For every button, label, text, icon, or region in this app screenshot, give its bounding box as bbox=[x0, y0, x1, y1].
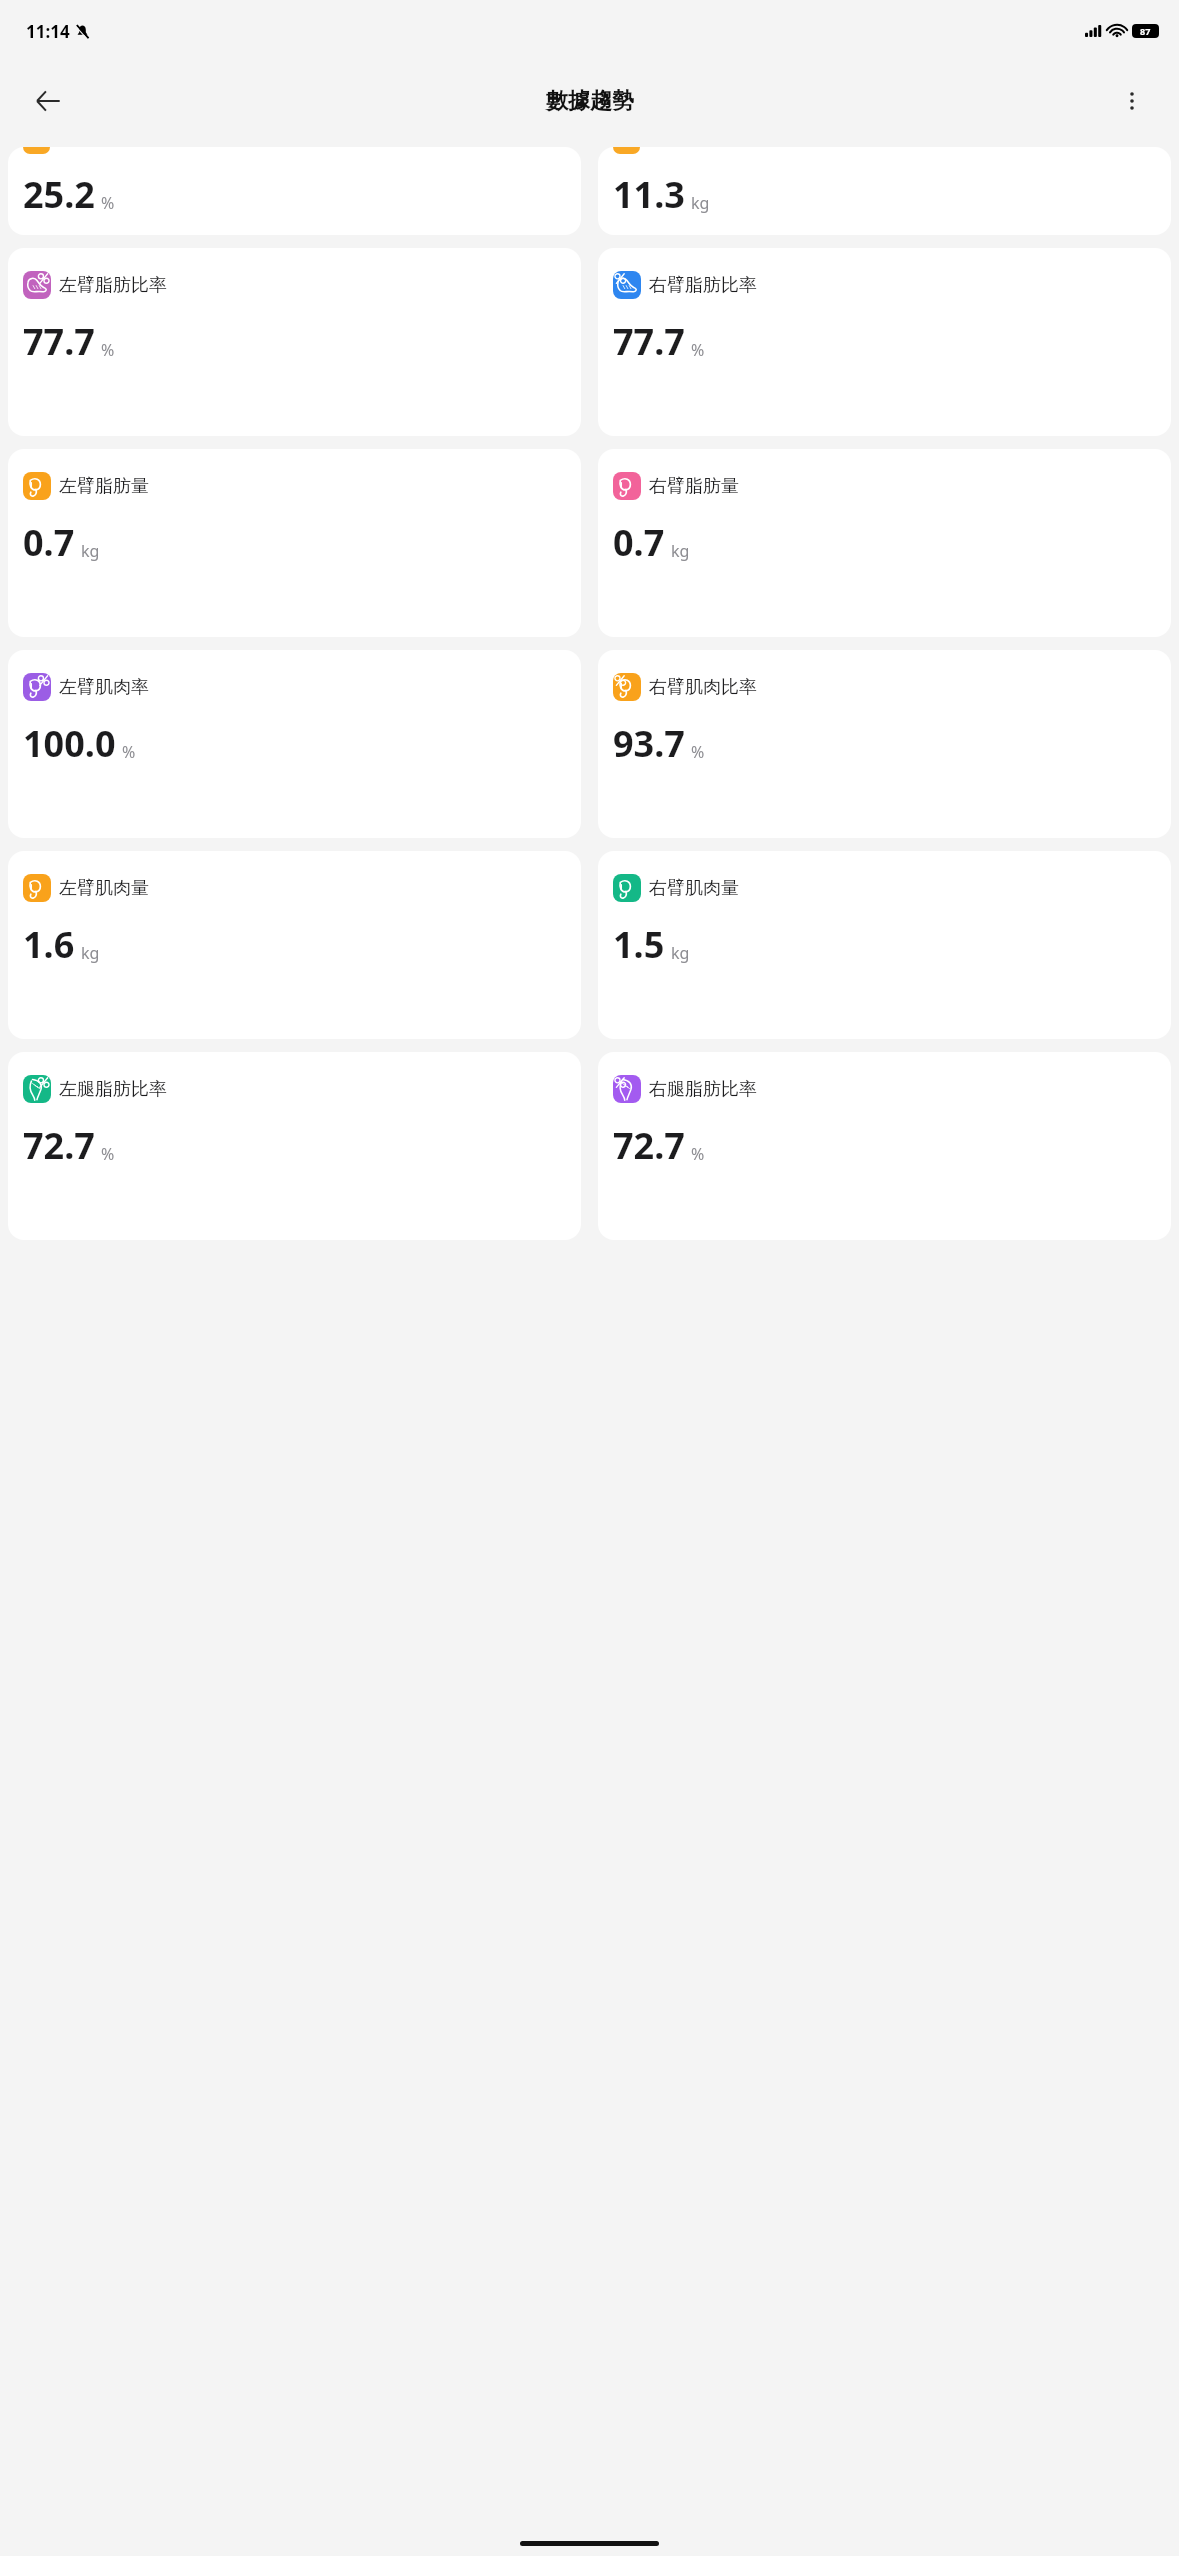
staticText: 左臂肌肉率 bbox=[59, 676, 149, 699]
staticText: 左腿脂肪比率 bbox=[59, 1078, 167, 1101]
staticText: 左臂脂肪量 bbox=[59, 475, 149, 498]
staticText: kg bbox=[81, 540, 100, 562]
staticText: 100.0 bbox=[23, 719, 116, 768]
staticText: kg bbox=[691, 192, 710, 214]
button[interactable]: 左臂脂肪量 bbox=[8, 449, 581, 637]
button[interactable]: 右臂脂肪比率 bbox=[598, 248, 1171, 436]
button[interactable]: Back bbox=[22, 75, 74, 127]
staticText: 左臂肌肉量 bbox=[59, 877, 149, 900]
button[interactable]: 左臂肌肉量 bbox=[8, 851, 581, 1039]
staticText: % bbox=[101, 192, 115, 214]
staticText: 右臂脂肪量 bbox=[649, 475, 739, 498]
staticText: 93.7 bbox=[613, 719, 685, 768]
button[interactable]: 25.2 bbox=[8, 147, 581, 235]
button[interactable]: 右腿脂肪比率 bbox=[598, 1052, 1171, 1240]
staticText: 87 bbox=[1140, 25, 1151, 37]
staticText: 數據趨勢 bbox=[546, 87, 634, 115]
staticText: 11.3 bbox=[613, 170, 685, 219]
button[interactable]: 左臂肌肉率 bbox=[8, 650, 581, 838]
staticText: kg bbox=[671, 540, 690, 562]
button[interactable]: 右臂肌肉量 bbox=[598, 851, 1171, 1039]
button[interactable]: 11.3 bbox=[598, 147, 1171, 235]
staticText: 左臂脂肪比率 bbox=[59, 274, 167, 297]
staticText: 77.7 bbox=[613, 317, 685, 366]
staticText: 1.6 bbox=[23, 920, 75, 969]
button[interactable]: 左腿脂肪比率 bbox=[8, 1052, 581, 1240]
button[interactable]: 右臂肌肉比率 bbox=[598, 650, 1171, 838]
staticText: % bbox=[101, 1143, 115, 1165]
staticText: 11:14 bbox=[26, 20, 70, 43]
staticText: 右臂肌肉量 bbox=[649, 877, 739, 900]
staticText: % bbox=[691, 339, 705, 361]
staticText: 右臂脂肪比率 bbox=[649, 274, 757, 297]
staticText: 72.7 bbox=[23, 1121, 95, 1170]
button[interactable]: 右臂脂肪量 bbox=[598, 449, 1171, 637]
staticText: 0.7 bbox=[613, 518, 665, 567]
staticText: % bbox=[101, 339, 115, 361]
staticText: 0.7 bbox=[23, 518, 75, 567]
staticText: 右臂肌肉比率 bbox=[649, 676, 757, 699]
staticText: 77.7 bbox=[23, 317, 95, 366]
staticText: % bbox=[691, 741, 705, 763]
staticText: % bbox=[691, 1143, 705, 1165]
staticText: 右腿脂肪比率 bbox=[649, 1078, 757, 1101]
staticText: 1.5 bbox=[613, 920, 665, 969]
staticText: % bbox=[122, 741, 136, 763]
button[interactable]: More options bbox=[1107, 76, 1157, 126]
button[interactable]: 左臂脂肪比率 bbox=[8, 248, 581, 436]
staticText: 72.7 bbox=[613, 1121, 685, 1170]
staticText: kg bbox=[81, 942, 100, 964]
staticText: 25.2 bbox=[23, 170, 95, 219]
staticText: kg bbox=[671, 942, 690, 964]
